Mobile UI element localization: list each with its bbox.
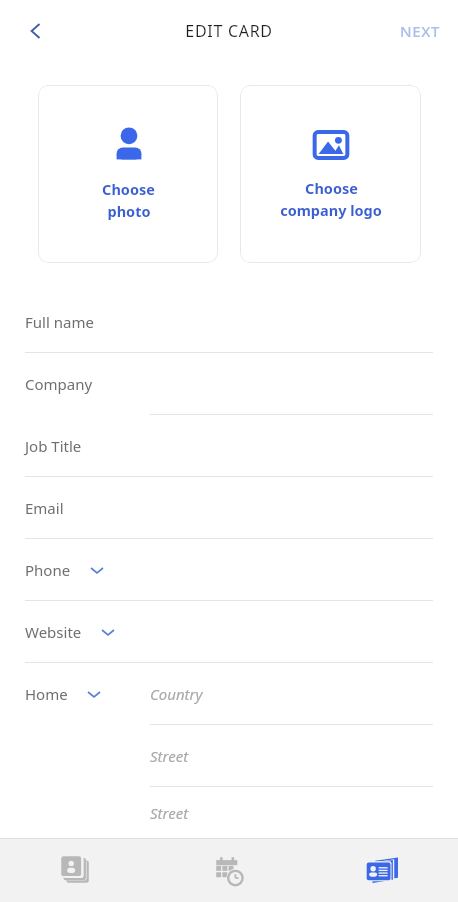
button[interactable]: Country <box>150 663 458 725</box>
staticText: Website <box>25 622 82 642</box>
button[interactable]: Contacts <box>0 839 152 902</box>
staticText: company logo <box>280 200 382 220</box>
button[interactable]: Company <box>0 353 458 415</box>
staticText: Full name <box>25 312 94 332</box>
button[interactable]: Email <box>0 477 458 539</box>
button[interactable]: Phone <box>0 539 458 601</box>
button[interactable]: Website <box>0 601 458 663</box>
button[interactable]: Cards <box>305 839 458 902</box>
staticText: photo <box>107 201 151 221</box>
staticText: EDIT CARD <box>185 20 273 42</box>
staticText: Street <box>150 746 189 766</box>
staticText: Choose <box>305 178 358 198</box>
staticText: Job Title <box>25 436 82 456</box>
staticText: Phone <box>25 560 71 580</box>
staticText: NEXT <box>400 21 440 41</box>
staticText: Company <box>25 374 93 394</box>
staticText: Email <box>25 498 64 518</box>
button[interactable]: Choose company logo <box>240 85 421 263</box>
button[interactable]: Choose photo <box>38 85 218 263</box>
staticText: Home <box>25 684 68 704</box>
button[interactable]: Back <box>14 9 58 53</box>
button[interactable]: Street <box>150 787 458 838</box>
button[interactable]: Home <box>0 663 150 838</box>
button[interactable]: Schedule <box>152 839 305 902</box>
button[interactable]: Full name <box>0 291 458 353</box>
staticText: Street <box>150 803 189 823</box>
button[interactable]: Street <box>150 725 458 787</box>
staticText: Country <box>150 684 203 704</box>
staticText: Choose <box>102 179 155 199</box>
button[interactable]: Job Title <box>0 415 458 477</box>
button[interactable]: NEXT <box>382 9 458 53</box>
